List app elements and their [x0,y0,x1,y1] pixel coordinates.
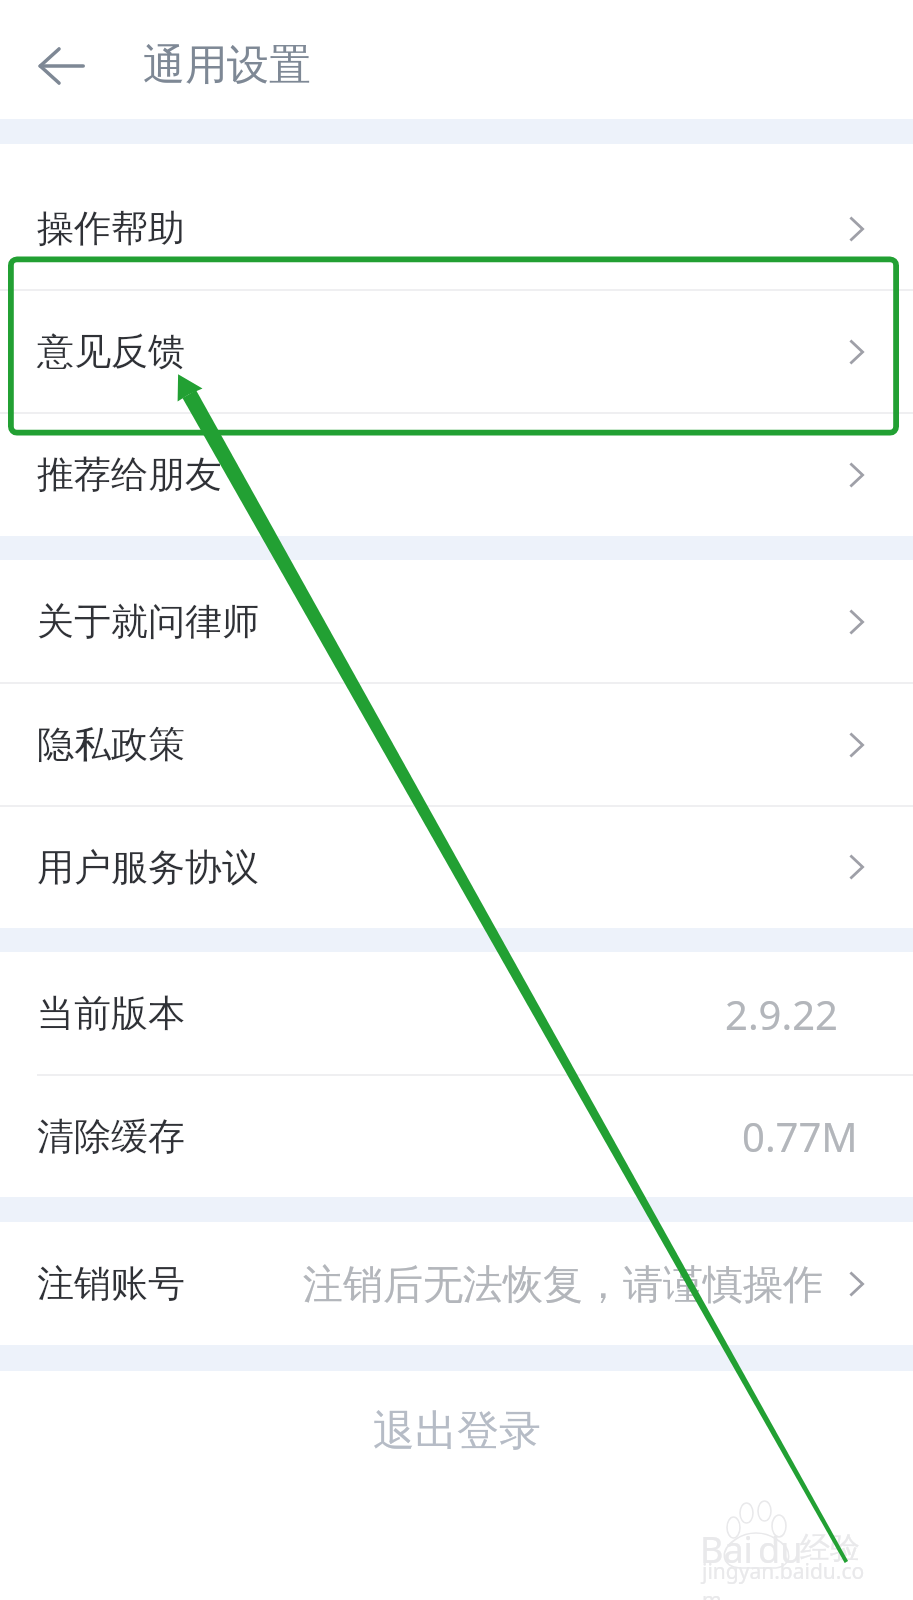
staticText: 注销账号 [37,1260,185,1307]
staticText: 隐私政策 [37,721,185,768]
staticText: Bai [700,1525,753,1574]
button[interactable]: 当前版本 [0,952,913,1075]
button[interactable]: 注销账号 [0,1222,913,1345]
button[interactable]: 关于就问律师 [0,560,913,683]
button[interactable]: Back [0,12,122,119]
button[interactable]: 隐私政策 [0,683,913,806]
staticText: 当前版本 [37,990,185,1037]
staticText: 经验 [800,1529,860,1567]
staticText: 用户服务协议 [37,844,259,891]
staticText: 推荐给朋友 [37,451,222,498]
button[interactable]: 用户服务协议 [0,806,913,928]
staticText: 关于就问律师 [37,598,259,645]
button[interactable]: 退出登录 [0,1371,913,1491]
staticText: 意见反馈 [37,328,185,375]
staticText: 2.9.22 [725,987,838,1041]
staticText: 退出登录 [373,1405,541,1458]
staticText: 清除缓存 [37,1113,185,1160]
staticText: 操作帮助 [37,205,185,252]
button[interactable]: 推荐给朋友 [0,413,913,536]
button[interactable]: 清除缓存 [0,1075,913,1197]
staticText: jingyan.baidu.com [702,1557,866,1600]
staticText: 通用设置 [143,39,311,92]
staticText: du [758,1525,803,1574]
staticText: 0.77M [742,1109,858,1163]
button[interactable]: 意见反馈 [0,290,913,413]
button[interactable]: 操作帮助 [0,144,913,290]
staticText: 注销后无法恢复，请谨慎操作 [303,1259,823,1309]
